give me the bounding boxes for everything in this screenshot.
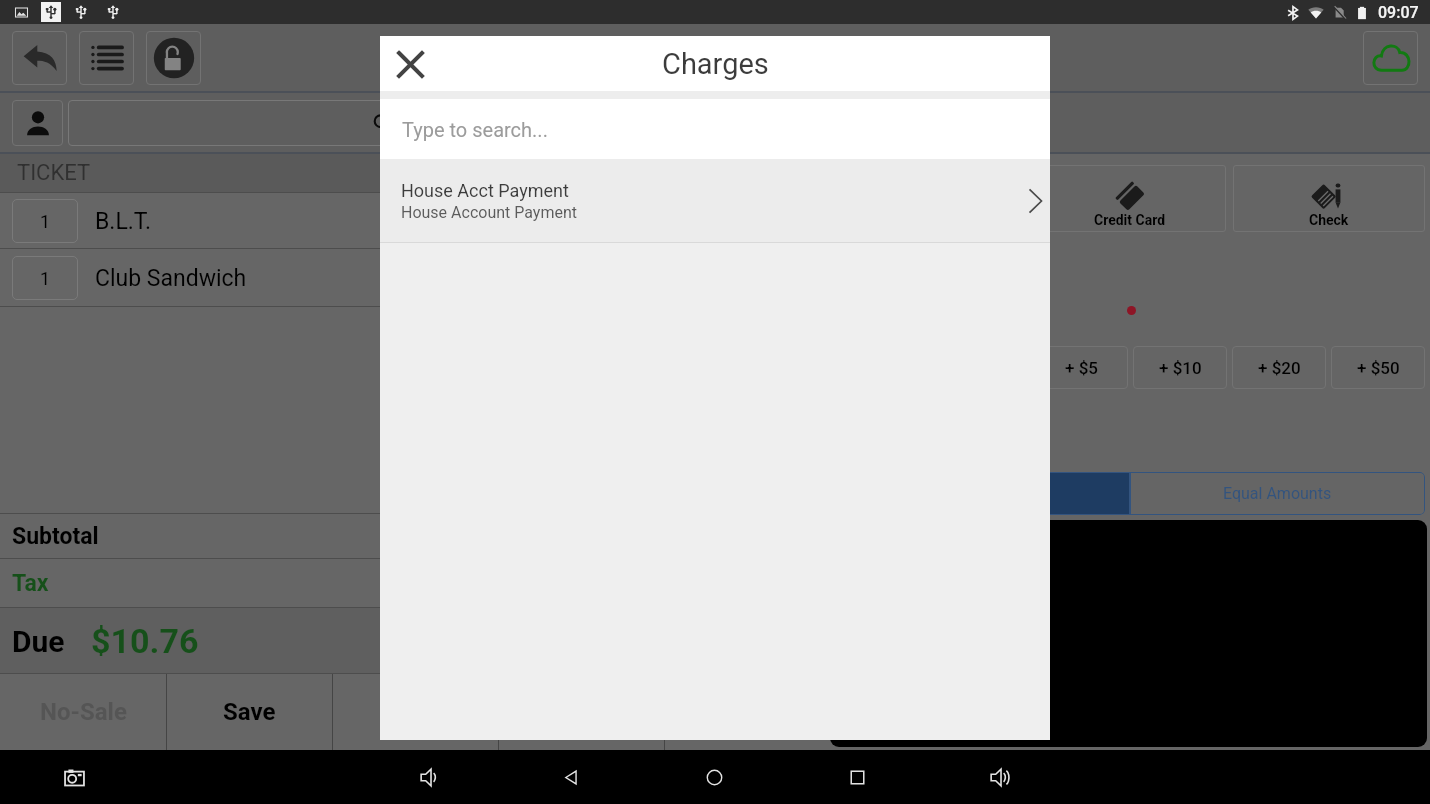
staticText: Tax — [12, 570, 49, 597]
button[interactable]: Close — [387, 41, 433, 87]
staticText: Subtotal — [12, 523, 99, 550]
button[interactable]: Type to search... — [380, 99, 1050, 159]
button[interactable] — [665, 674, 830, 750]
button[interactable]: Back — [12, 31, 67, 85]
button[interactable]: 1 — [0, 193, 830, 248]
button[interactable]: + $10 — [1133, 346, 1227, 389]
staticText: Save — [223, 698, 276, 726]
button[interactable]: Menu — [79, 31, 134, 85]
staticText: B.L.T. — [95, 208, 152, 235]
button[interactable]: Split Evenly — [836, 472, 1130, 515]
staticText: 1 — [40, 268, 51, 289]
staticText: $10.76 — [91, 621, 199, 661]
staticText: + $50 — [1357, 358, 1400, 378]
staticText: Credit Card — [1094, 212, 1166, 228]
button[interactable]: Credit Card — [1034, 165, 1226, 232]
staticText: Due — [12, 624, 65, 659]
button[interactable]: 1 — [0, 249, 830, 306]
staticText: 1 — [40, 211, 51, 232]
button[interactable]: Volume down — [409, 757, 449, 797]
staticText: No-Sale — [40, 698, 127, 726]
button[interactable] — [499, 674, 664, 750]
button[interactable]: Back — [551, 757, 591, 797]
button[interactable]: Screenshot — [54, 757, 94, 797]
button[interactable] — [68, 100, 696, 146]
button[interactable]: Save — [167, 674, 332, 750]
button[interactable]: Volume up — [979, 757, 1019, 797]
button[interactable]: + $20 — [1232, 346, 1326, 389]
staticText: + $5 — [1065, 358, 1098, 378]
staticText: 09:07 — [1378, 3, 1419, 22]
staticText: House Acct Payment — [401, 180, 569, 201]
button[interactable]: No-Sale — [0, 674, 166, 750]
button[interactable]: House Acct Payment — [380, 159, 1050, 242]
button[interactable]: Customer — [12, 100, 63, 146]
button[interactable]: Home — [694, 757, 734, 797]
button[interactable]: 1 — [12, 199, 78, 243]
button[interactable]: + $50 — [1331, 346, 1425, 389]
button[interactable]: Cloud sync — [1363, 31, 1418, 85]
staticText: + $20 — [1258, 358, 1301, 378]
staticText: Equal Amounts — [1223, 484, 1332, 503]
staticText: House Account Payment — [401, 203, 577, 222]
button[interactable]: Equal Amounts — [1130, 472, 1425, 515]
staticText: TICKET — [17, 160, 91, 186]
button[interactable]: Unlock — [146, 31, 201, 85]
staticText: + $10 — [1159, 358, 1202, 378]
staticText: Charges — [662, 47, 769, 81]
button[interactable]: Check — [1233, 165, 1425, 232]
staticText: Type to search... — [402, 118, 548, 141]
button[interactable]: + $5 — [1034, 346, 1128, 389]
button[interactable]: Recents — [837, 757, 877, 797]
staticText: Check — [1309, 212, 1349, 228]
button[interactable]: 1 — [12, 256, 78, 300]
staticText: Club Sandwich — [95, 265, 247, 292]
button[interactable] — [333, 674, 498, 750]
